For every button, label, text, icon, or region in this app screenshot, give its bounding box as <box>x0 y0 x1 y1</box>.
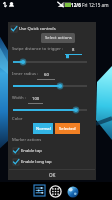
button[interactable]: Select actions <box>41 33 75 43</box>
button[interactable]: Enable tap <box>13 146 53 155</box>
button[interactable]: Normal <box>33 123 53 134</box>
staticText: 100 <box>32 96 40 102</box>
button[interactable] <box>11 82 89 90</box>
staticText: Fri 12:15 am <box>82 2 109 8</box>
button[interactable]: All apps <box>48 184 62 198</box>
staticText: Select actions <box>45 35 72 41</box>
button[interactable]: OK <box>9 170 95 180</box>
button[interactable]: Browser <box>66 185 79 198</box>
staticText: Use Quick controls <box>19 26 56 32</box>
staticText: 8 <box>72 47 75 53</box>
button[interactable]: Enable long tap <box>13 157 58 166</box>
staticText: 60 <box>44 72 49 78</box>
staticText: Enable long tap <box>21 159 52 165</box>
button[interactable]: Use Quick controls <box>11 24 59 33</box>
button[interactable]: Quick settings <box>33 184 45 196</box>
staticText: OK <box>49 172 56 178</box>
staticText: Color <box>12 116 23 122</box>
staticText: Inner radius : <box>12 71 39 77</box>
button[interactable]: Selected <box>55 123 80 134</box>
staticText: Marker actions <box>12 137 42 143</box>
staticText: Enable tap <box>21 148 42 154</box>
staticText: Selected <box>59 126 76 132</box>
staticText: Width : <box>12 95 26 101</box>
staticText: 12/6 <box>71 2 81 8</box>
staticText: Normal <box>36 126 51 132</box>
staticText: Swipe distance to trigger : <box>12 46 64 52</box>
button[interactable] <box>11 58 89 66</box>
button[interactable] <box>11 106 89 114</box>
